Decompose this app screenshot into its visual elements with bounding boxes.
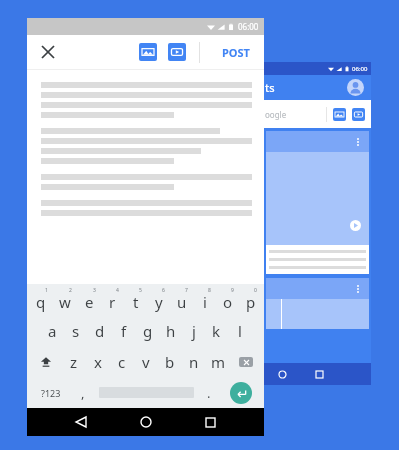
staticText: oogle (265, 109, 287, 120)
button[interactable]: 1 (29, 284, 53, 315)
button[interactable]: 2 (53, 284, 77, 315)
button[interactable]: b (158, 346, 182, 377)
button[interactable]: 4 (101, 284, 124, 315)
button[interactable]: More options (266, 131, 369, 274)
button[interactable]: . (197, 377, 221, 408)
staticText: v (142, 352, 150, 372)
staticText: f (121, 321, 127, 341)
staticText: 0 (254, 287, 257, 294)
staticText: e (85, 292, 94, 312)
button[interactable]: Back (70, 411, 92, 433)
button[interactable]: Backspace (230, 346, 262, 377)
staticText: 3 (93, 287, 96, 294)
staticText: j (192, 321, 196, 341)
button[interactable]: Add video (352, 108, 365, 121)
button[interactable]: c (110, 346, 134, 377)
button[interactable]: Recents (199, 411, 221, 433)
button[interactable]: ?123 (31, 377, 71, 408)
staticText: c (118, 352, 126, 372)
staticText: 9 (231, 287, 234, 294)
button[interactable]: Space (95, 377, 197, 408)
button[interactable]: j (182, 315, 205, 346)
button[interactable]: Enter (221, 377, 260, 408)
staticText: i (203, 292, 207, 312)
button[interactable]: Home (276, 368, 289, 381)
staticText: k (212, 321, 221, 341)
button[interactable]: More options (353, 284, 363, 294)
button[interactable]: x (86, 346, 110, 377)
button[interactable]: a (40, 315, 64, 346)
button[interactable]: Add photo (333, 108, 346, 121)
button[interactable]: f (112, 315, 136, 346)
button[interactable]: Close (36, 40, 60, 64)
button[interactable]: s (64, 315, 88, 346)
staticText: 6 (162, 287, 165, 294)
button[interactable]: Add video (168, 43, 186, 61)
button[interactable]: v (134, 346, 158, 377)
button[interactable]: 6 (147, 284, 170, 315)
staticText: . (207, 384, 211, 402)
staticText: , (81, 384, 85, 402)
staticText: n (189, 352, 199, 372)
button[interactable]: POST (218, 40, 254, 65)
staticText: s (72, 321, 80, 341)
button[interactable]: h (159, 315, 182, 346)
staticText: z (70, 352, 78, 372)
button[interactable]: z (62, 346, 86, 377)
staticText: 06:00 (352, 65, 368, 73)
button[interactable]: 0 (239, 284, 262, 315)
button[interactable]: l (228, 315, 251, 346)
button[interactable]: n (182, 346, 206, 377)
staticText: ts (265, 80, 275, 95)
button[interactable]: More options (266, 278, 369, 329)
staticText: POST (222, 45, 250, 60)
staticText: l (238, 321, 242, 341)
staticText: 06:00 (238, 21, 259, 32)
button[interactable]: , (71, 377, 95, 408)
button[interactable]: 7 (170, 284, 193, 315)
staticText: p (246, 292, 256, 312)
button[interactable]: 3 (77, 284, 101, 315)
button[interactable]: 9 (216, 284, 239, 315)
staticText: x (94, 352, 102, 372)
staticText: a (48, 321, 57, 341)
staticText: o (223, 292, 233, 312)
staticText: 4 (116, 287, 119, 294)
staticText: 5 (139, 287, 142, 294)
staticText: w (59, 292, 71, 312)
button[interactable]: Home (135, 411, 157, 433)
staticText: g (143, 321, 153, 341)
staticText: y (155, 292, 163, 312)
button[interactable]: k (205, 315, 228, 346)
button[interactable]: 8 (193, 284, 216, 315)
staticText: r (109, 292, 116, 312)
staticText: t (133, 292, 139, 312)
button[interactable]: Add photo (139, 43, 157, 61)
staticText: 7 (185, 287, 188, 294)
button[interactable]: g (136, 315, 159, 346)
staticText: d (95, 321, 105, 341)
staticText: 1 (45, 287, 48, 294)
staticText: b (165, 352, 175, 372)
button[interactable]: Account (347, 79, 364, 96)
staticText: 8 (208, 287, 211, 294)
button[interactable]: 5 (124, 284, 147, 315)
button[interactable]: Recents (313, 368, 326, 381)
staticText: 2 (69, 287, 72, 294)
button[interactable]: m (206, 346, 230, 377)
staticText: u (177, 292, 187, 312)
button[interactable]: Shift (29, 346, 62, 377)
staticText: q (36, 292, 46, 312)
button[interactable]: d (88, 315, 112, 346)
staticText: h (166, 321, 176, 341)
staticText: ?123 (41, 387, 61, 399)
staticText: m (211, 352, 226, 372)
button[interactable]: More options (353, 137, 363, 147)
